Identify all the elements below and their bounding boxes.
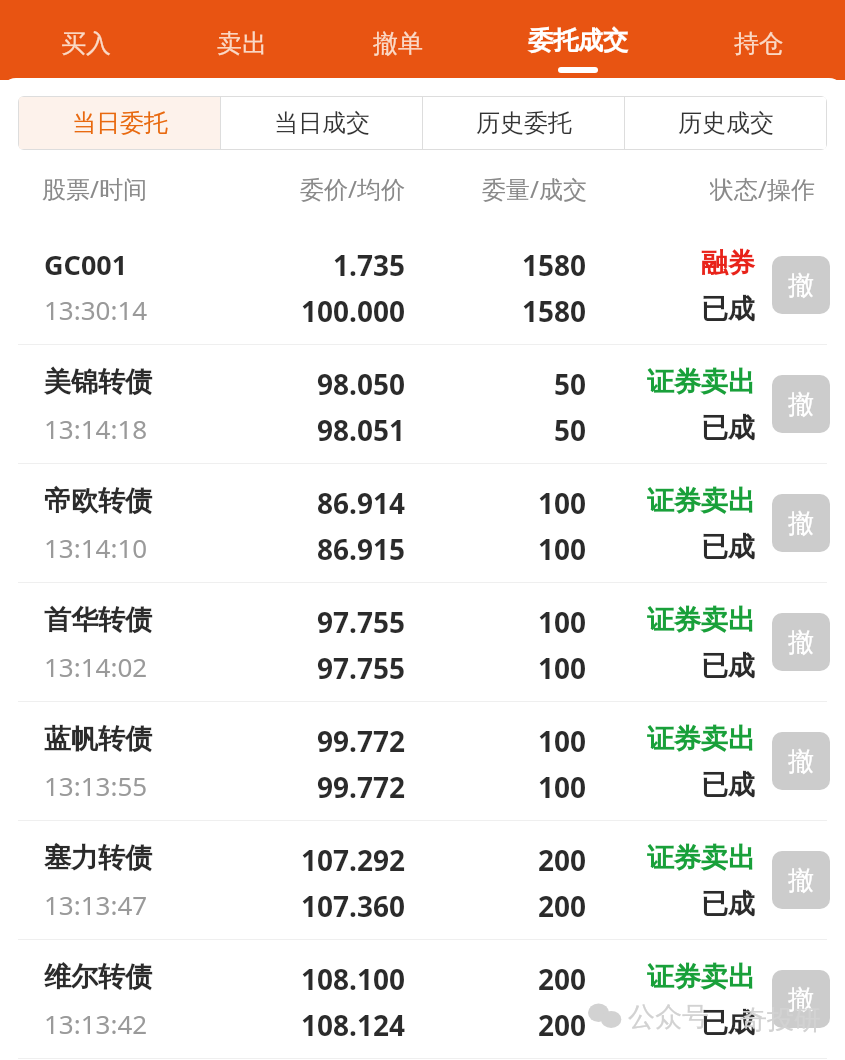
staticText: 证券卖出 [647,841,755,875]
staticText: 融券 [701,246,755,280]
button[interactable]: 美锦转债 [0,345,845,463]
staticText: 撤 [788,507,814,540]
button[interactable]: 撤单 [772,375,830,433]
button[interactable]: 撤单 [772,732,830,790]
button[interactable]: 维尔转债 [0,940,845,1058]
staticText: 108.124 [301,1006,405,1044]
staticText: 98.051 [317,411,405,449]
staticText: 撤 [788,983,814,1016]
staticText: 50 [554,365,587,403]
button[interactable]: 撤单 [772,494,830,552]
button[interactable]: 买入 [51,0,121,80]
staticText: 100 [538,722,587,760]
staticText: 99.772 [317,722,405,760]
staticText: 蓝帆转债 [44,722,152,756]
staticText: 108.100 [301,960,405,998]
staticText: 13:13:47 [44,887,148,922]
staticText: 股票/时间 [42,172,147,204]
staticText: 100 [538,530,587,568]
staticText: 历史委托 [476,108,572,138]
staticText: 1.735 [333,246,405,284]
staticText: 100.000 [301,292,405,330]
staticText: 97.755 [317,603,405,641]
staticText: 200 [538,960,587,998]
staticText: 证券卖出 [647,960,755,994]
staticText: 107.360 [301,887,405,925]
staticText: 维尔转债 [44,960,152,994]
button[interactable]: 持仓 [724,0,794,80]
staticText: 卖出 [217,28,267,59]
staticText: 已成 [701,530,755,564]
staticText: 100 [538,484,587,522]
staticText: 委量/成交 [482,172,587,204]
staticText: 13:13:42 [44,1006,148,1041]
staticText: 首华转债 [44,603,152,637]
staticText: 已成 [701,768,755,802]
staticText: 100 [538,603,587,641]
staticText: 历史成交 [678,108,774,138]
staticText: 持仓 [734,28,784,59]
staticText: 撤 [788,745,814,778]
button[interactable]: 历史委托 [423,97,624,149]
staticText: 100 [538,649,587,687]
staticText: 美锦转债 [44,365,152,399]
staticText: 证券卖出 [647,603,755,637]
staticText: 撤 [788,626,814,659]
staticText: 200 [538,887,587,925]
staticText: 86.915 [317,530,405,568]
staticText: 证券卖出 [647,722,755,756]
staticText: 1580 [522,246,587,284]
staticText: 公众号 [628,1000,709,1034]
staticText: 已成 [701,292,755,326]
button[interactable]: 帝欧转债 [0,464,845,582]
button[interactable]: 撤单 [363,0,433,80]
button[interactable]: 卖出 [207,0,277,80]
staticText: 已成 [701,649,755,683]
staticText: GC001 [44,246,128,283]
staticText: 50 [554,411,587,449]
staticText: 107.292 [301,841,405,879]
staticText: 当日成交 [274,108,370,138]
staticText: 当日委托 [72,108,168,138]
staticText: 200 [538,1006,587,1044]
staticText: 97.755 [317,649,405,687]
staticText: 98.050 [317,365,405,403]
staticText: 证券卖出 [647,484,755,518]
staticText: 奇投研 [740,1003,821,1037]
button[interactable]: 撤单 [772,613,830,671]
button[interactable]: 首华转债 [0,583,845,701]
staticText: 13:13:55 [44,768,148,803]
staticText: 状态/操作 [710,172,815,204]
staticText: 已成 [701,411,755,445]
staticText: 200 [538,841,587,879]
staticText: 13:14:10 [44,530,148,565]
staticText: 委价/均价 [300,172,405,204]
staticText: 99.772 [317,768,405,806]
staticText: 帝欧转债 [44,484,152,518]
staticText: 100 [538,768,587,806]
button[interactable]: GC001 [0,226,845,344]
staticText: 买入 [61,28,111,59]
staticText: 委托成交 [528,25,628,56]
button[interactable]: 当日成交 [221,97,422,149]
button[interactable]: 撤单 [772,851,830,909]
button[interactable]: 蓝帆转债 [0,702,845,820]
staticText: 1580 [522,292,587,330]
staticText: 已成 [701,1006,755,1040]
staticText: 撤单 [373,28,423,59]
button[interactable]: 委托成交 [518,0,638,80]
staticText: 塞力转债 [44,841,152,875]
button[interactable]: 塞力转债 [0,821,845,939]
button[interactable]: 撤单 [772,970,830,1028]
staticText: 撤 [788,388,814,421]
button[interactable]: 撤单 [772,256,830,314]
button[interactable]: 历史成交 [625,97,826,149]
staticText: 撤 [788,864,814,897]
staticText: 13:14:18 [44,411,148,446]
staticText: 13:30:14 [44,292,148,327]
button[interactable]: 当日委托 [19,97,220,149]
staticText: 86.914 [317,484,405,522]
staticText: 证券卖出 [647,365,755,399]
staticText: 13:14:02 [44,649,148,684]
staticText: 撤 [788,269,814,302]
